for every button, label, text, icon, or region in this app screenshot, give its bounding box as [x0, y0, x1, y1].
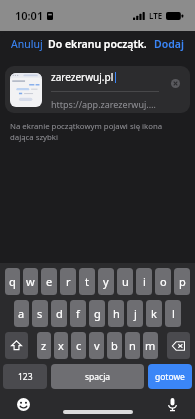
button[interactable]: a — [14, 300, 29, 327]
staticText: 10:01 — [15, 8, 44, 23]
staticText: spacja — [85, 371, 111, 383]
button[interactable]: c — [71, 332, 86, 359]
staticText: zarezerwuj.pl — [51, 70, 114, 84]
staticText: o — [160, 274, 167, 289]
staticText: https://app.zarezerwuj.pl/schedules/cal… — [51, 98, 159, 110]
staticText: i — [143, 274, 146, 289]
staticText: r — [66, 274, 71, 289]
staticText: z — [41, 338, 47, 353]
staticText: c — [76, 338, 82, 353]
button[interactable]: f — [70, 300, 86, 327]
button[interactable]: z — [37, 332, 51, 359]
button[interactable]: Dodaj — [143, 33, 195, 55]
button[interactable]: spacja — [51, 364, 144, 389]
button[interactable]: Backspace — [167, 332, 190, 359]
button[interactable]: Shift — [5, 332, 28, 359]
staticText: p — [179, 274, 186, 289]
staticText: v — [94, 338, 100, 353]
button[interactable]: k — [146, 300, 162, 327]
button[interactable]: m — [143, 332, 158, 359]
staticText: f — [76, 306, 80, 321]
staticText: Dodaj — [154, 37, 184, 51]
button[interactable]: i — [136, 268, 152, 295]
staticText: x — [58, 338, 64, 353]
button[interactable]: v — [89, 332, 104, 359]
staticText: LTE — [149, 10, 163, 21]
staticText: Anuluj — [11, 37, 43, 51]
button[interactable]: w — [23, 268, 38, 295]
button[interactable]: o — [155, 268, 171, 295]
staticText: Do ekranu początk. — [48, 37, 147, 51]
button[interactable]: zarezerwuj.pl — [5, 66, 190, 113]
button[interactable]: l — [165, 300, 181, 327]
button[interactable]: b — [107, 332, 122, 359]
button[interactable]: x — [54, 332, 68, 359]
staticText: w — [26, 274, 35, 289]
button[interactable]: Anuluj — [0, 33, 54, 55]
button[interactable]: p — [174, 268, 190, 295]
staticText: b — [111, 338, 118, 353]
button[interactable]: j — [127, 300, 143, 327]
staticText: y — [103, 274, 109, 289]
button[interactable]: y — [98, 268, 114, 295]
button[interactable]: g — [89, 300, 105, 327]
staticText: k — [151, 306, 157, 321]
button[interactable]: gotowe — [148, 364, 192, 389]
button[interactable]: Wyczyść — [165, 73, 185, 93]
staticText: u — [122, 274, 129, 289]
staticText: t — [85, 274, 89, 289]
staticText: a — [18, 306, 25, 321]
staticText: d — [56, 306, 63, 321]
button[interactable]: Emoji — [14, 395, 32, 413]
staticText: n — [129, 338, 136, 353]
staticText: e — [46, 274, 53, 289]
staticText: g — [94, 306, 101, 321]
button[interactable]: n — [125, 332, 140, 359]
staticText: Na ekranie początkowym pojawi się ikona … — [10, 121, 185, 143]
button[interactable]: u — [117, 268, 133, 295]
staticText: m — [145, 338, 156, 353]
staticText: gotowe — [155, 371, 185, 383]
button[interactable]: d — [51, 300, 67, 327]
button[interactable]: e — [41, 268, 57, 295]
staticText: j — [134, 306, 137, 321]
staticText: 123 — [18, 371, 33, 383]
button[interactable]: q — [5, 268, 20, 295]
staticText: s — [37, 306, 43, 321]
button[interactable]: t — [79, 268, 95, 295]
staticText: q — [9, 274, 16, 289]
staticText: l — [172, 306, 175, 321]
button[interactable]: 123 — [3, 364, 47, 389]
button[interactable]: s — [32, 300, 48, 327]
staticText: h — [113, 306, 120, 321]
button[interactable]: h — [108, 300, 124, 327]
button[interactable]: r — [60, 268, 76, 295]
button[interactable]: Dictate — [163, 395, 181, 413]
